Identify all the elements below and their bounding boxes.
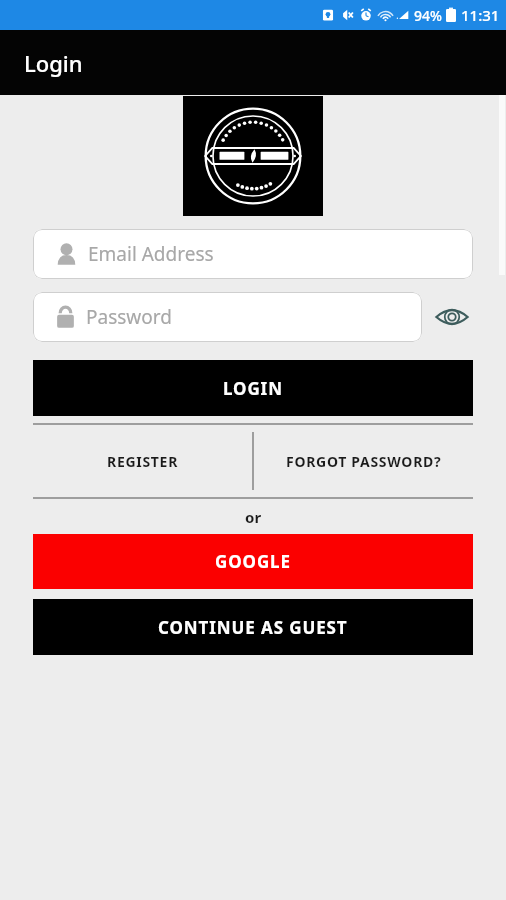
button[interactable]: Email Address — [33, 229, 473, 279]
button[interactable]: CONTINUE AS GUEST — [33, 599, 473, 655]
staticText: REGISTER — [107, 452, 179, 471]
button[interactable]: REGISTER — [33, 425, 252, 497]
staticText: FORGOT PASSWORD? — [286, 452, 442, 471]
button[interactable]: GOOGLE — [33, 534, 473, 589]
staticText: CONTINUE AS GUEST — [158, 616, 348, 639]
staticText: Email Address — [88, 241, 214, 267]
staticText: or — [245, 507, 262, 527]
button[interactable]: Password — [33, 292, 422, 342]
staticText: Password — [86, 304, 172, 330]
button[interactable]: FORGOT PASSWORD? — [254, 425, 473, 497]
staticText: GOOGLE — [215, 550, 291, 573]
button[interactable]: Show password — [430, 295, 474, 339]
staticText: Login — [24, 48, 83, 78]
button[interactable]: LOGIN — [33, 360, 473, 416]
staticText: 11:31 — [461, 5, 500, 25]
staticText: LOGIN — [223, 377, 283, 400]
staticText: 94% — [414, 6, 442, 25]
